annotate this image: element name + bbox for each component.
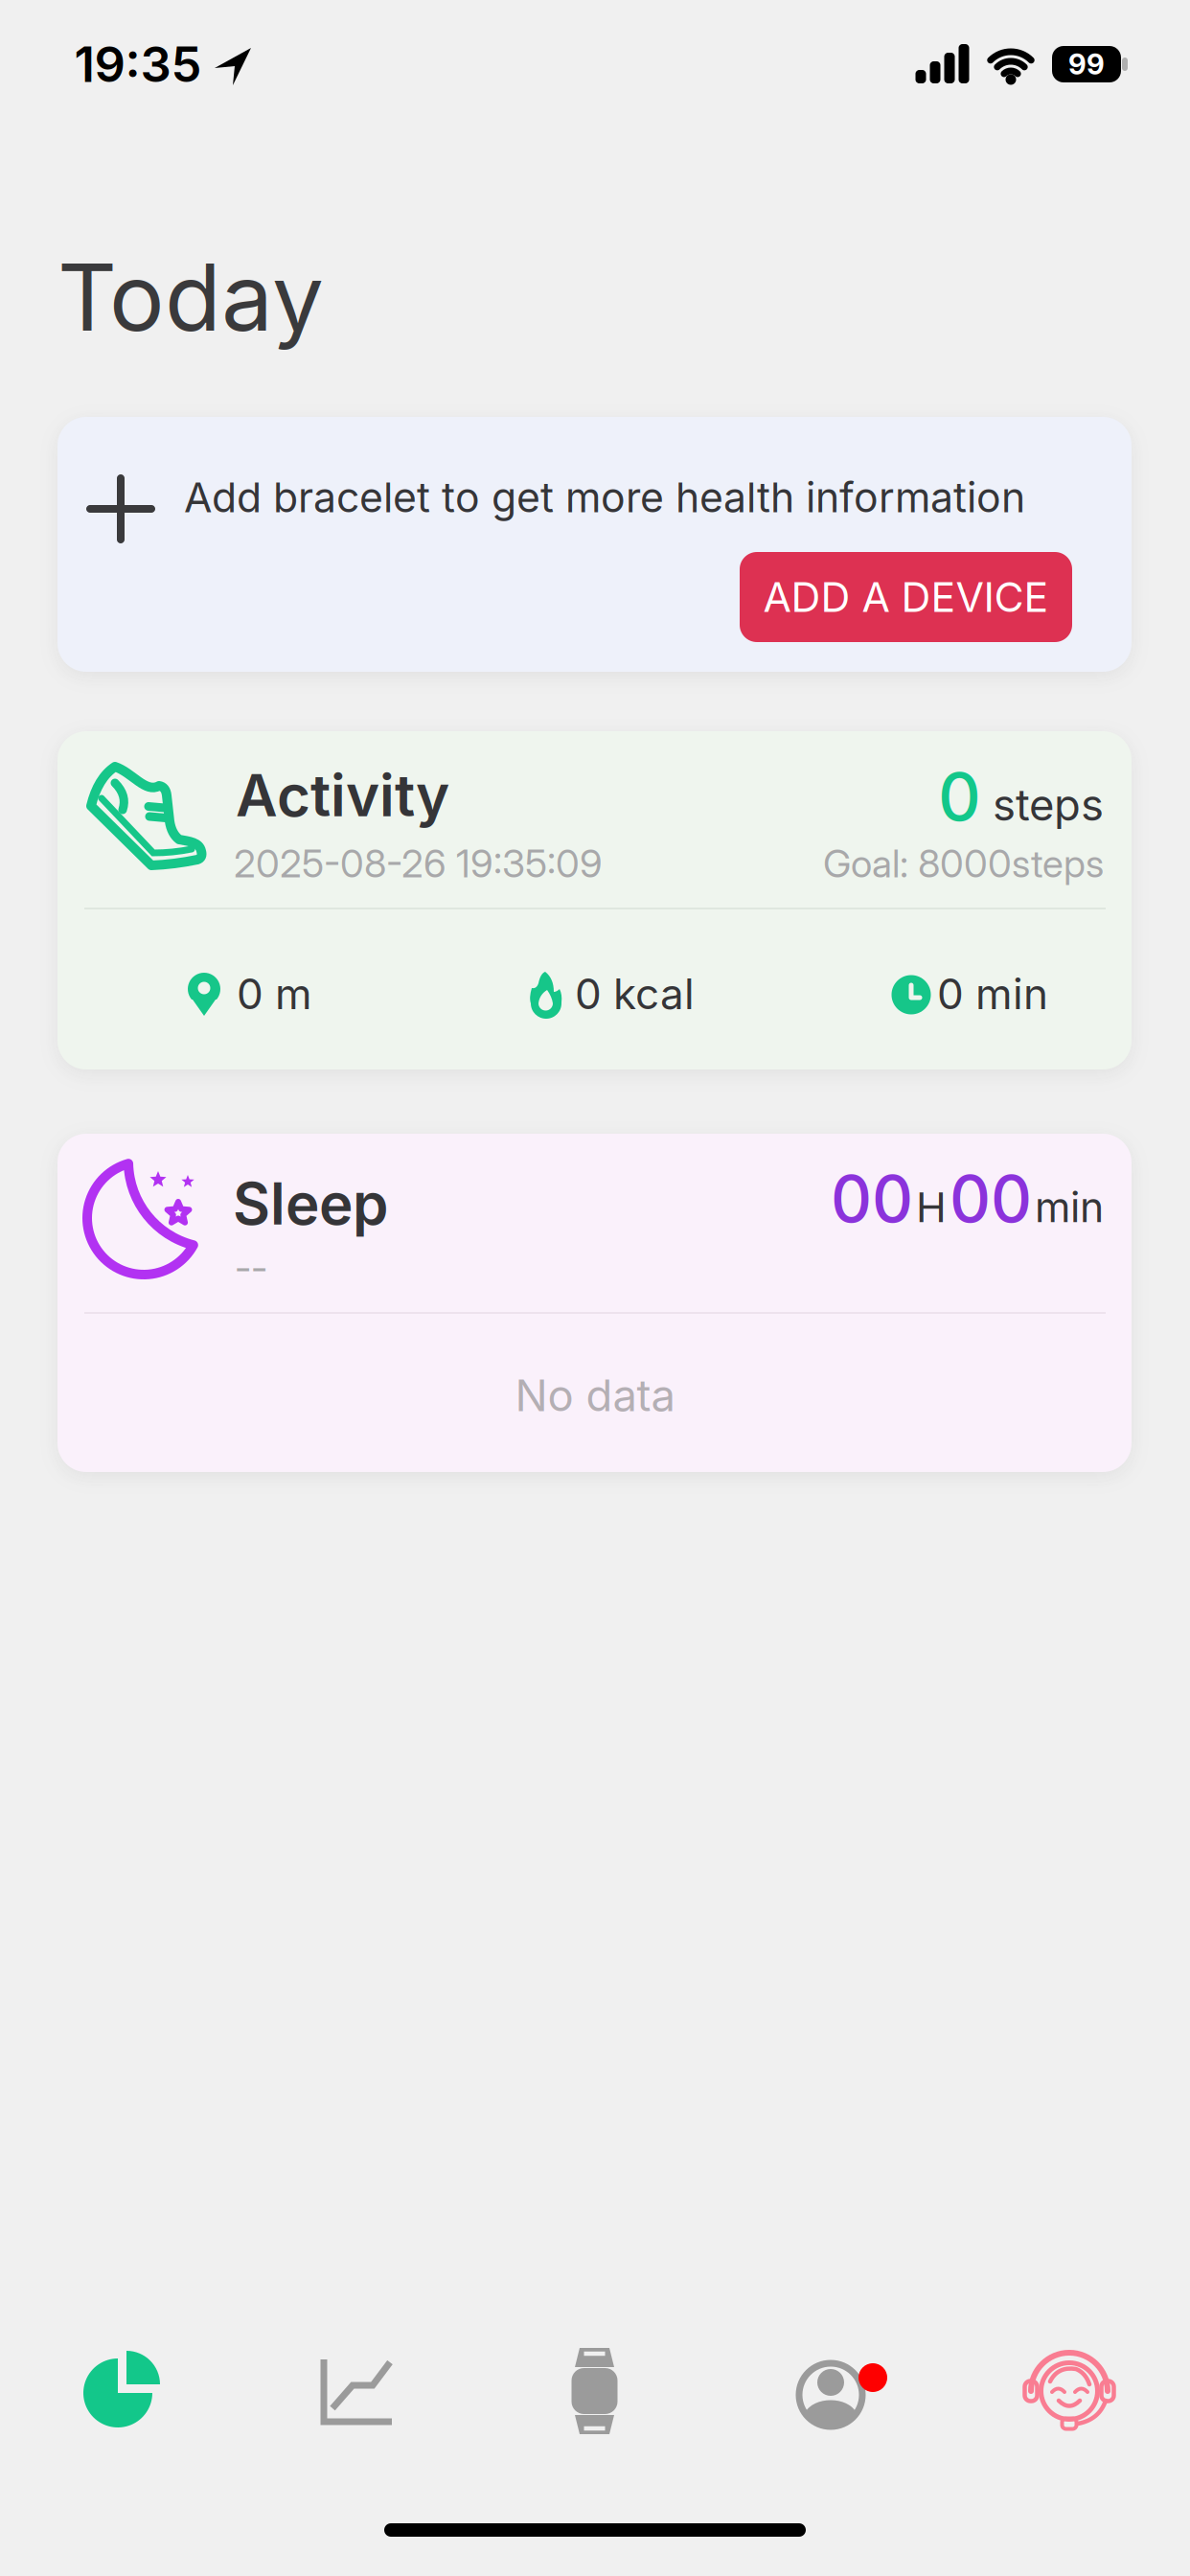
staticText: Today (57, 243, 324, 351)
staticText: 00 (831, 1161, 913, 1237)
staticText: No data (515, 1370, 675, 1421)
staticText: 19:35 (74, 36, 202, 93)
staticText: Activity (236, 761, 449, 829)
staticText: 0 kcal (575, 969, 695, 1019)
button[interactable]: Device (538, 2334, 652, 2449)
staticText: Goal: 8000steps (823, 841, 1104, 886)
staticText: H (916, 1183, 947, 1231)
staticText: -- (235, 1244, 267, 1290)
staticText: 2025-08-26 19:35:09 (234, 841, 603, 886)
staticText: 0 (938, 757, 981, 836)
staticText: steps (993, 779, 1104, 830)
staticText: 00 (950, 1161, 1032, 1237)
staticText: Add bracelet to get more health informat… (184, 473, 1025, 521)
staticText: ADD A DEVICE (763, 573, 1049, 621)
staticText: 99 (1068, 48, 1105, 81)
staticText: 0 min (937, 969, 1048, 1019)
button[interactable]: Trends (300, 2334, 415, 2449)
button[interactable]: Sleep (57, 1134, 1132, 1472)
staticText: 0 m (237, 969, 312, 1019)
button[interactable]: Profile (775, 2334, 890, 2449)
button[interactable]: ADD A DEVICE (740, 552, 1072, 642)
button[interactable]: Activity (57, 731, 1132, 1069)
button[interactable]: Support (1013, 2334, 1128, 2449)
staticText: min (1035, 1183, 1104, 1231)
staticText: Sleep (233, 1170, 388, 1238)
button[interactable]: Today (61, 2334, 176, 2449)
